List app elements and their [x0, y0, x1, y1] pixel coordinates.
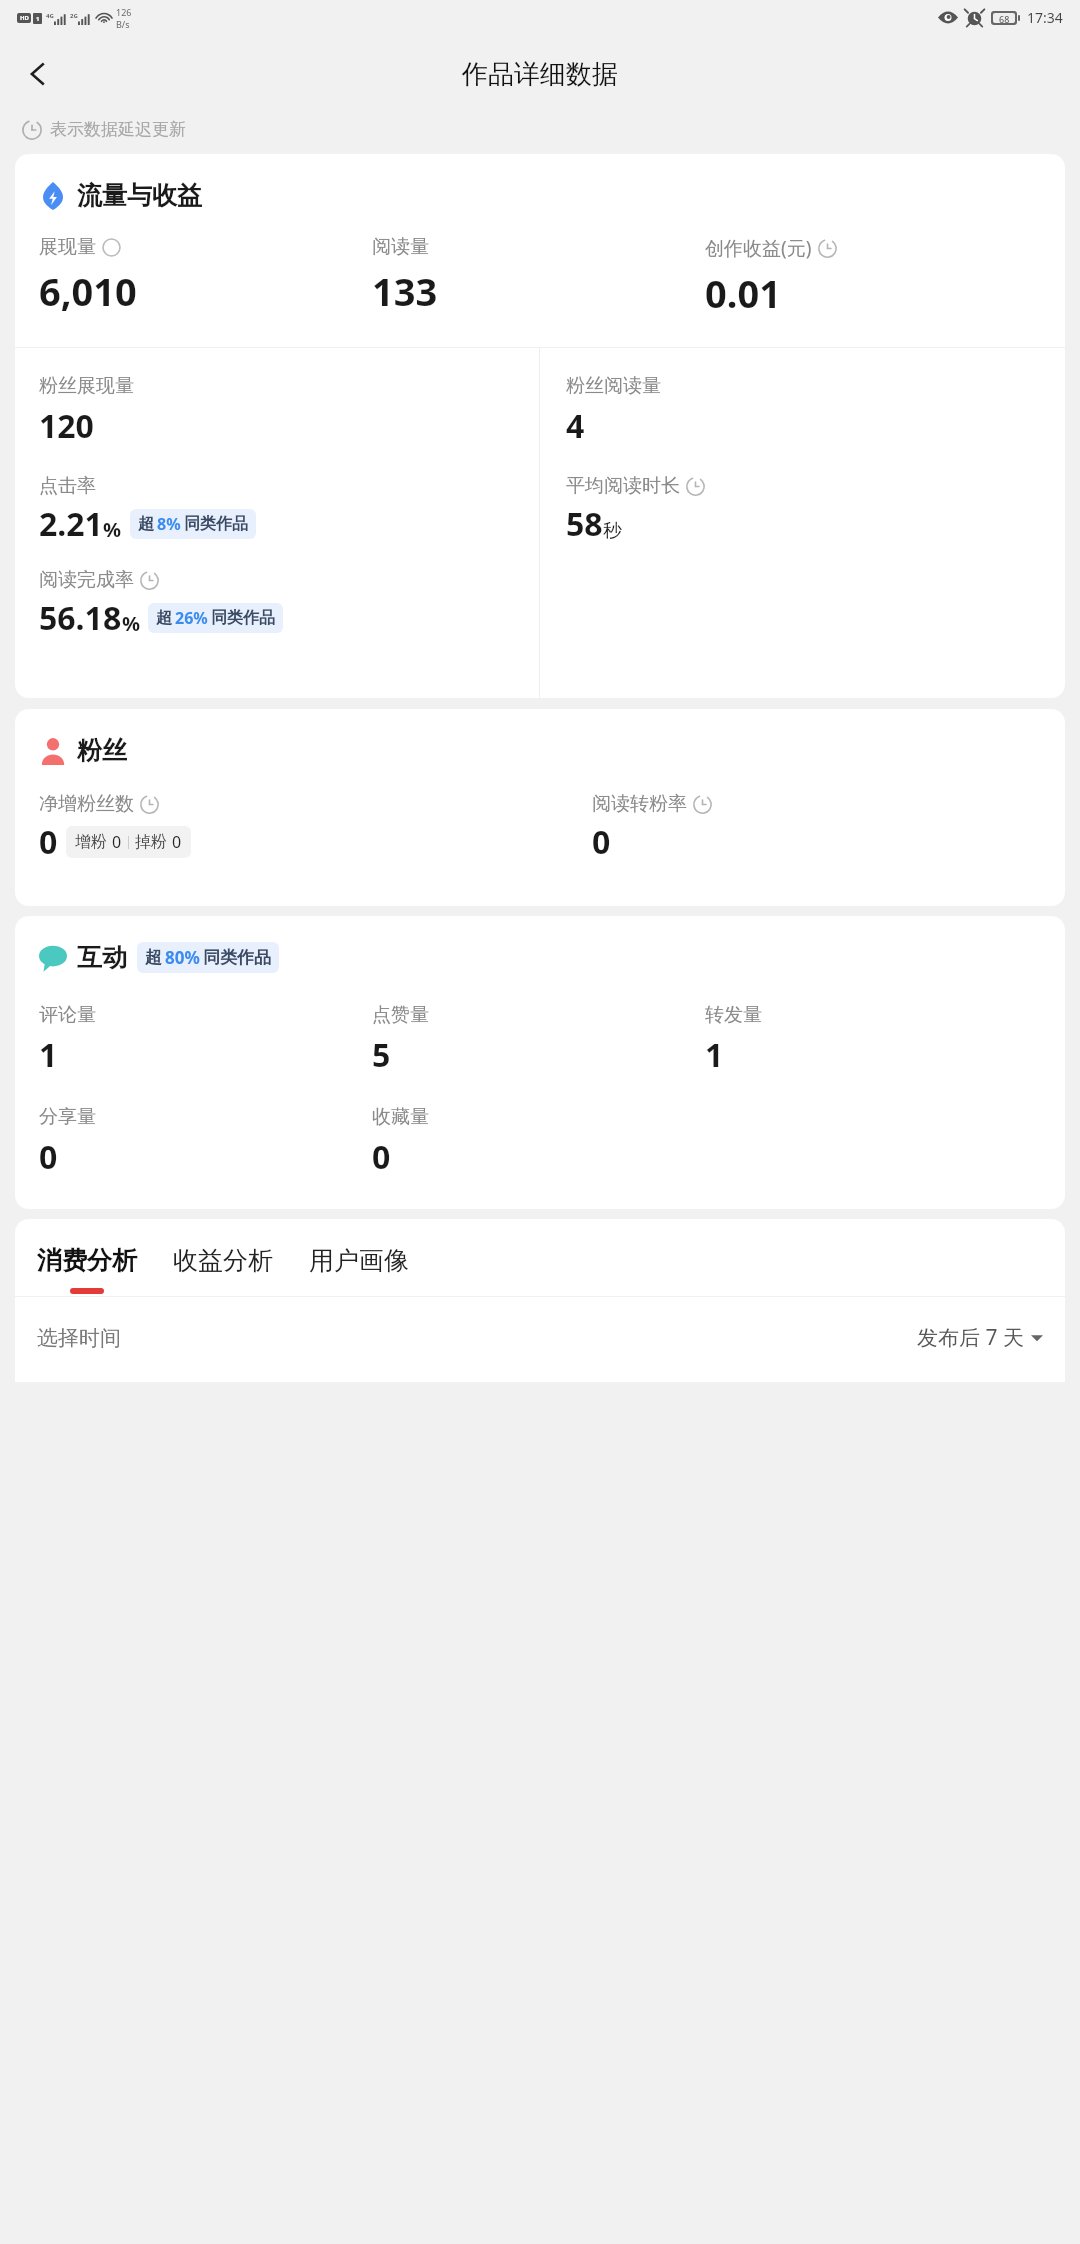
- button[interactable]: 发布后 7 天: [917, 1323, 1043, 1352]
- staticText: 粉丝阅读量: [566, 374, 661, 398]
- staticText: 阅读转粉率: [592, 792, 687, 816]
- staticText: %: [122, 610, 141, 637]
- staticText: 126: [116, 6, 132, 18]
- button[interactable]: Back: [10, 46, 66, 102]
- staticText: 评论量: [39, 1003, 96, 1027]
- staticText: 转发量: [705, 1003, 762, 1027]
- staticText: 133: [372, 265, 438, 317]
- staticText: B/s: [116, 18, 130, 30]
- staticText: 80%: [165, 946, 200, 969]
- staticText: 平均阅读时长: [566, 474, 680, 498]
- staticText: 26%: [175, 607, 208, 629]
- staticText: 同类作品: [184, 514, 248, 534]
- staticText: %: [103, 516, 122, 543]
- staticText: 消费分析: [37, 1245, 137, 1276]
- staticText: HD: [20, 14, 29, 22]
- staticText: 58: [566, 502, 603, 546]
- staticText: 8%: [157, 513, 181, 535]
- staticText: 0: [172, 831, 182, 853]
- staticText: 2G: [70, 12, 78, 20]
- staticText: 2.21: [39, 502, 103, 546]
- staticText: 增粉: [75, 832, 107, 852]
- staticText: 阅读量: [372, 235, 429, 259]
- staticText: 展现量: [39, 235, 96, 259]
- staticText: 创作收益(元): [705, 235, 812, 261]
- staticText: 56.18: [39, 596, 122, 640]
- button[interactable]: 增粉: [75, 831, 182, 853]
- staticText: 同类作品: [211, 608, 275, 628]
- staticText: 用户画像: [309, 1245, 409, 1276]
- staticText: 0: [39, 1135, 58, 1179]
- staticText: 秒: [603, 519, 622, 543]
- staticText: 流量与收益: [77, 180, 202, 211]
- button[interactable]: 超: [156, 607, 275, 629]
- staticText: 120: [39, 404, 94, 448]
- staticText: 1: [39, 1033, 58, 1077]
- staticText: 掉粉: [135, 832, 167, 852]
- staticText: 0.01: [705, 267, 781, 319]
- button[interactable]: 消费分析: [37, 1245, 137, 1294]
- staticText: 4G: [46, 12, 54, 20]
- staticText: 阅读完成率: [39, 568, 134, 592]
- staticText: 0: [112, 831, 122, 853]
- staticText: 收益分析: [173, 1245, 273, 1276]
- staticText: 0: [372, 1135, 391, 1179]
- staticText: 0: [39, 820, 58, 864]
- staticText: 17:34: [1027, 8, 1063, 27]
- staticText: 选择时间: [37, 1325, 121, 1351]
- staticText: 超: [145, 947, 162, 968]
- staticText: 5: [372, 1033, 391, 1077]
- staticText: 0: [592, 820, 611, 864]
- button[interactable]: 收益分析: [173, 1245, 273, 1294]
- staticText: 6,010: [39, 265, 137, 317]
- staticText: 净增粉丝数: [39, 792, 134, 816]
- staticText: 1: [705, 1033, 724, 1077]
- staticText: 4: [566, 404, 585, 448]
- staticText: 粉丝: [77, 735, 127, 766]
- staticText: 收藏量: [372, 1105, 429, 1129]
- staticText: 超: [138, 514, 154, 534]
- button[interactable]: 超: [138, 513, 248, 535]
- staticText: 粉丝展现量: [39, 374, 134, 398]
- button[interactable]: 超: [145, 946, 271, 969]
- staticText: 发布后 7 天: [917, 1323, 1024, 1352]
- staticText: 点赞量: [372, 1003, 429, 1027]
- staticText: 表示数据延迟更新: [50, 119, 186, 140]
- button[interactable]: 用户画像: [309, 1245, 409, 1294]
- staticText: 作品详细数据: [462, 58, 618, 91]
- staticText: 超: [156, 608, 172, 628]
- staticText: 1: [36, 15, 40, 23]
- staticText: 68: [999, 13, 1010, 23]
- staticText: 同类作品: [203, 947, 271, 968]
- staticText: 点击率: [39, 474, 96, 498]
- staticText: 互动: [77, 942, 127, 973]
- staticText: 分享量: [39, 1105, 96, 1129]
